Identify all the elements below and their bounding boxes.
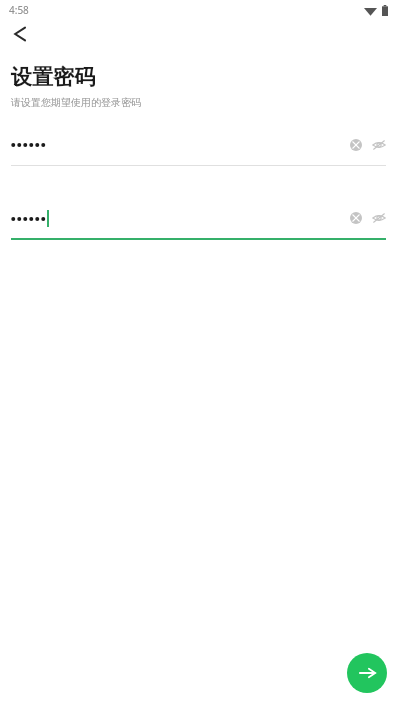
button[interactable]: Clear bbox=[0, 131, 396, 159]
staticText: 设置密码 bbox=[11, 64, 95, 90]
button[interactable]: Back bbox=[0, 20, 40, 48]
button[interactable]: Clear bbox=[346, 208, 366, 228]
button[interactable]: Clear bbox=[346, 135, 366, 155]
button[interactable]: Next bbox=[347, 653, 387, 693]
button[interactable]: Clear bbox=[0, 204, 396, 232]
button[interactable]: Show password bbox=[369, 135, 389, 155]
button[interactable]: Show password bbox=[369, 208, 389, 228]
staticText: 4:58 bbox=[9, 3, 29, 17]
staticText: 请设置您期望使用的登录密码 bbox=[11, 96, 141, 109]
